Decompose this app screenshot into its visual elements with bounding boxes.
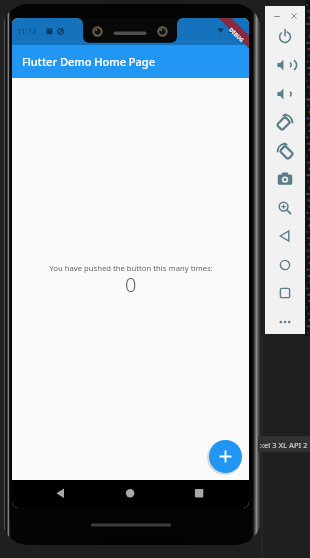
- button[interactable]: Volume down: [275, 84, 295, 104]
- button[interactable]: Home: [275, 255, 295, 275]
- staticText: Flutter Demo Home Page: [22, 54, 155, 69]
- staticText: 11:12: [17, 26, 37, 36]
- button[interactable]: Minimise: [272, 11, 282, 21]
- button[interactable]: Close: [289, 11, 299, 21]
- staticText: xel 3 XL API 2: [260, 440, 308, 450]
- button[interactable]: Power: [275, 27, 295, 47]
- button[interactable]: Volume up: [275, 55, 295, 75]
- button[interactable]: Overview: [275, 283, 295, 303]
- staticText: 0: [125, 271, 137, 298]
- staticText: You have pushed the button this many tim…: [49, 263, 213, 273]
- button[interactable]: Zoom: [275, 198, 295, 218]
- button[interactable]: Rotate left: [275, 112, 295, 132]
- staticText: DEBUG: [228, 26, 246, 43]
- button[interactable]: Screenshot: [275, 169, 295, 189]
- button[interactable]: Back: [275, 226, 295, 246]
- button[interactable]: More: [275, 312, 295, 332]
- button[interactable]: Rotate right: [275, 141, 295, 161]
- button[interactable]: Increment: [209, 440, 242, 473]
